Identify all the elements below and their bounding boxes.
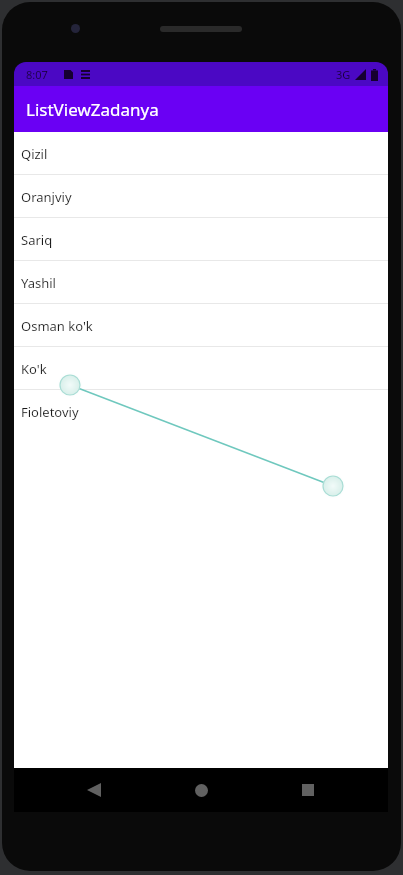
button[interactable]: Home	[179, 768, 223, 812]
button[interactable]: Qizil	[14, 132, 388, 175]
button[interactable]: Ko'k	[14, 347, 388, 390]
staticText: Fioletoviy	[21, 403, 79, 421]
staticText: Yashil	[21, 274, 56, 292]
staticText: Sariq	[21, 231, 53, 249]
button[interactable]: Sariq	[14, 218, 388, 261]
staticText: Qizil	[21, 145, 48, 163]
staticText: Ko'k	[21, 360, 47, 378]
staticText: 8:07	[26, 67, 48, 82]
staticText: Osman ko'k	[21, 317, 93, 335]
button[interactable]: Osman ko'k	[14, 304, 388, 347]
button[interactable]: Fioletoviy	[14, 390, 388, 433]
button[interactable]: Oranjviy	[14, 175, 388, 218]
button[interactable]: Recent apps	[286, 768, 330, 812]
staticText: ListViewZadanya	[26, 98, 159, 121]
button[interactable]: Yashil	[14, 261, 388, 304]
staticText: Oranjviy	[21, 188, 72, 206]
staticText: 3G	[336, 67, 351, 82]
button[interactable]: Back	[72, 768, 116, 812]
